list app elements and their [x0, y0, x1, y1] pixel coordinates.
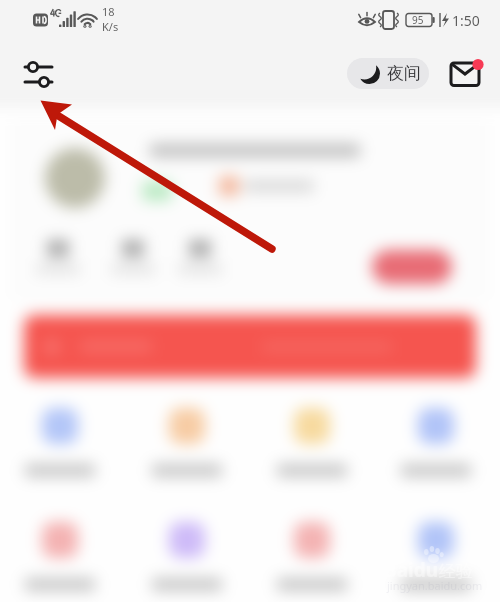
button[interactable]: Filter settings — [12, 48, 58, 94]
button[interactable]: 夜间 — [347, 58, 429, 89]
staticText: 95 — [412, 13, 424, 27]
staticText: 夜间 — [387, 63, 421, 84]
staticText: 经验 — [439, 561, 473, 582]
staticText: 1:50 — [452, 11, 480, 30]
staticText: 18 — [102, 4, 115, 19]
staticText: K/s — [102, 19, 119, 34]
button[interactable]: Messages — [443, 54, 487, 98]
staticText: jingyan.baidu.com — [387, 578, 483, 593]
staticText: Baidu — [384, 557, 439, 583]
